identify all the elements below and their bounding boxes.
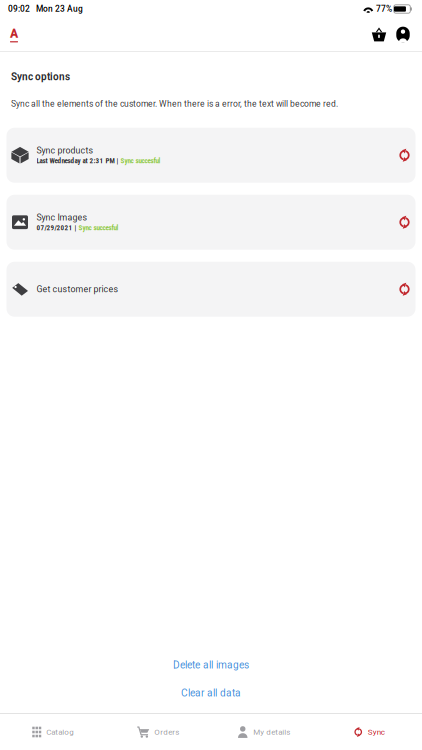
button[interactable]: Account bbox=[391, 18, 415, 50]
staticText: Sync succesful bbox=[78, 224, 118, 232]
staticText: Sync options bbox=[11, 71, 70, 83]
staticText: Last Wednesday at 2:31 PM | bbox=[36, 157, 120, 165]
button[interactable]: Delete all images bbox=[0, 651, 422, 679]
staticText: A bbox=[10, 27, 18, 41]
staticText: Get customer prices bbox=[36, 284, 118, 294]
staticText: Mon 23 Aug bbox=[36, 4, 83, 14]
staticText: Sync products bbox=[36, 145, 93, 156]
staticText: Sync all the elements of the customer. W… bbox=[11, 99, 338, 109]
staticText: 77% bbox=[376, 4, 392, 14]
button[interactable]: Clear all data bbox=[0, 679, 422, 707]
button[interactable]: My details bbox=[211, 714, 316, 750]
staticText: Orders bbox=[154, 727, 179, 737]
staticText: My details bbox=[253, 727, 290, 737]
staticText: Sync succesful bbox=[120, 157, 160, 165]
staticText: 07/29/2021 | bbox=[36, 224, 78, 232]
staticText: Sync Images bbox=[36, 212, 87, 223]
staticText: Sync bbox=[368, 727, 385, 737]
staticText: Catalog bbox=[46, 727, 73, 737]
button[interactable]: Basket bbox=[367, 18, 391, 50]
button[interactable]: Sync bbox=[316, 714, 422, 750]
staticText: 09:02 bbox=[8, 4, 30, 14]
button[interactable]: Get customer prices bbox=[6, 262, 415, 317]
button[interactable]: Home bbox=[1, 18, 27, 50]
staticText: Clear all data bbox=[181, 687, 241, 699]
button[interactable]: Catalog bbox=[0, 714, 105, 750]
button[interactable]: Sync Images bbox=[6, 195, 415, 250]
staticText: Delete all images bbox=[173, 659, 249, 671]
button[interactable]: Sync products bbox=[6, 128, 415, 183]
button[interactable]: Orders bbox=[105, 714, 211, 750]
